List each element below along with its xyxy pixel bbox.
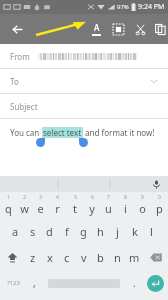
- button[interactable]: x: [41, 244, 58, 270]
- staticText: h: [97, 224, 104, 239]
- staticText: 8: [124, 194, 127, 201]
- button[interactable]: 5: [66, 192, 83, 218]
- staticText: z: [30, 250, 36, 265]
- staticText: 1: [7, 194, 10, 201]
- button[interactable]: Backspace: [143, 244, 168, 270]
- button[interactable]: Subject: [0, 94, 168, 118]
- button[interactable]: c: [58, 244, 75, 270]
- staticText: To: [10, 76, 19, 87]
- button[interactable]: Copy: [152, 19, 168, 39]
- staticText: ,: [33, 276, 36, 290]
- button[interactable]: h: [92, 218, 109, 244]
- button[interactable]: k: [126, 218, 143, 244]
- button[interactable]: ,: [26, 270, 42, 296]
- button[interactable]: Space: [42, 270, 126, 296]
- button[interactable]: v: [75, 244, 92, 270]
- button[interactable]: g: [75, 218, 92, 244]
- staticText: y: [89, 201, 95, 216]
- staticText: A: [94, 22, 100, 33]
- staticText: t: [73, 201, 77, 216]
- button[interactable]: Voice input: [150, 178, 162, 190]
- button[interactable]: Cut: [130, 19, 150, 39]
- button[interactable]: To: [0, 69, 168, 93]
- staticText: a: [12, 224, 19, 239]
- staticText: r: [55, 201, 60, 216]
- staticText: 5: [74, 194, 77, 201]
- staticText: w: [20, 201, 29, 216]
- staticText: q: [5, 201, 12, 216]
- button[interactable]: .: [126, 270, 142, 296]
- staticText: From: [10, 51, 30, 62]
- staticText: i: [124, 201, 127, 216]
- button[interactable]: l: [143, 218, 160, 244]
- staticText: 4: [56, 194, 59, 201]
- staticText: v: [81, 250, 87, 265]
- button[interactable]: Format text: [86, 19, 106, 39]
- staticText: ?123: [7, 279, 20, 287]
- button[interactable]: 3: [32, 192, 49, 218]
- button[interactable]: d: [41, 218, 58, 244]
- staticText: p: [156, 201, 163, 216]
- staticText: 97%: [117, 3, 129, 11]
- button[interactable]: ?123: [0, 270, 26, 296]
- staticText: f: [65, 224, 69, 239]
- button[interactable]: a: [7, 218, 24, 244]
- staticText: .: [133, 276, 136, 290]
- button[interactable]: z: [24, 244, 41, 270]
- staticText: k: [132, 224, 138, 239]
- staticText: j: [116, 224, 119, 239]
- button[interactable]: f: [58, 218, 75, 244]
- staticText: c: [64, 250, 70, 265]
- button[interactable]: s: [24, 218, 41, 244]
- button[interactable]: 4: [49, 192, 66, 218]
- button[interactable]: n: [109, 244, 126, 270]
- staticText: 0: [158, 194, 161, 201]
- button[interactable]: m: [126, 244, 143, 270]
- staticText: 6: [91, 194, 94, 201]
- staticText: g: [80, 224, 87, 239]
- button[interactable]: Select all: [108, 19, 128, 39]
- staticText: l: [150, 224, 153, 239]
- button[interactable]: 1: [0, 192, 16, 218]
- button[interactable]: 0: [151, 192, 168, 218]
- staticText: You can: [10, 127, 42, 138]
- staticText: 2: [23, 194, 26, 201]
- button[interactable]: j: [109, 218, 126, 244]
- staticText: d: [46, 224, 53, 239]
- button[interactable]: b: [92, 244, 109, 270]
- staticText: x: [47, 250, 53, 265]
- staticText: m: [129, 250, 140, 265]
- staticText: n: [114, 250, 121, 265]
- staticText: o: [139, 201, 146, 216]
- button[interactable]: Enter: [142, 270, 168, 296]
- staticText: s: [30, 224, 36, 239]
- staticText: 7: [107, 194, 110, 201]
- staticText: e: [37, 201, 44, 216]
- staticText: Subject: [10, 101, 38, 112]
- button[interactable]: 7: [100, 192, 117, 218]
- staticText: and format it now!: [83, 127, 155, 138]
- button[interactable]: Shift: [0, 244, 24, 270]
- staticText: select text: [43, 127, 82, 138]
- staticText: 3: [39, 194, 42, 201]
- staticText: b: [97, 250, 104, 265]
- button[interactable]: Back: [6, 18, 28, 40]
- staticText: 9: [141, 194, 144, 201]
- button[interactable]: 2: [16, 192, 32, 218]
- button[interactable]: 9: [134, 192, 151, 218]
- staticText: u: [105, 201, 112, 216]
- button[interactable]: 8: [117, 192, 134, 218]
- staticText: 9:24 PM: [138, 2, 165, 12]
- button[interactable]: From: [0, 44, 168, 68]
- button[interactable]: 6: [83, 192, 100, 218]
